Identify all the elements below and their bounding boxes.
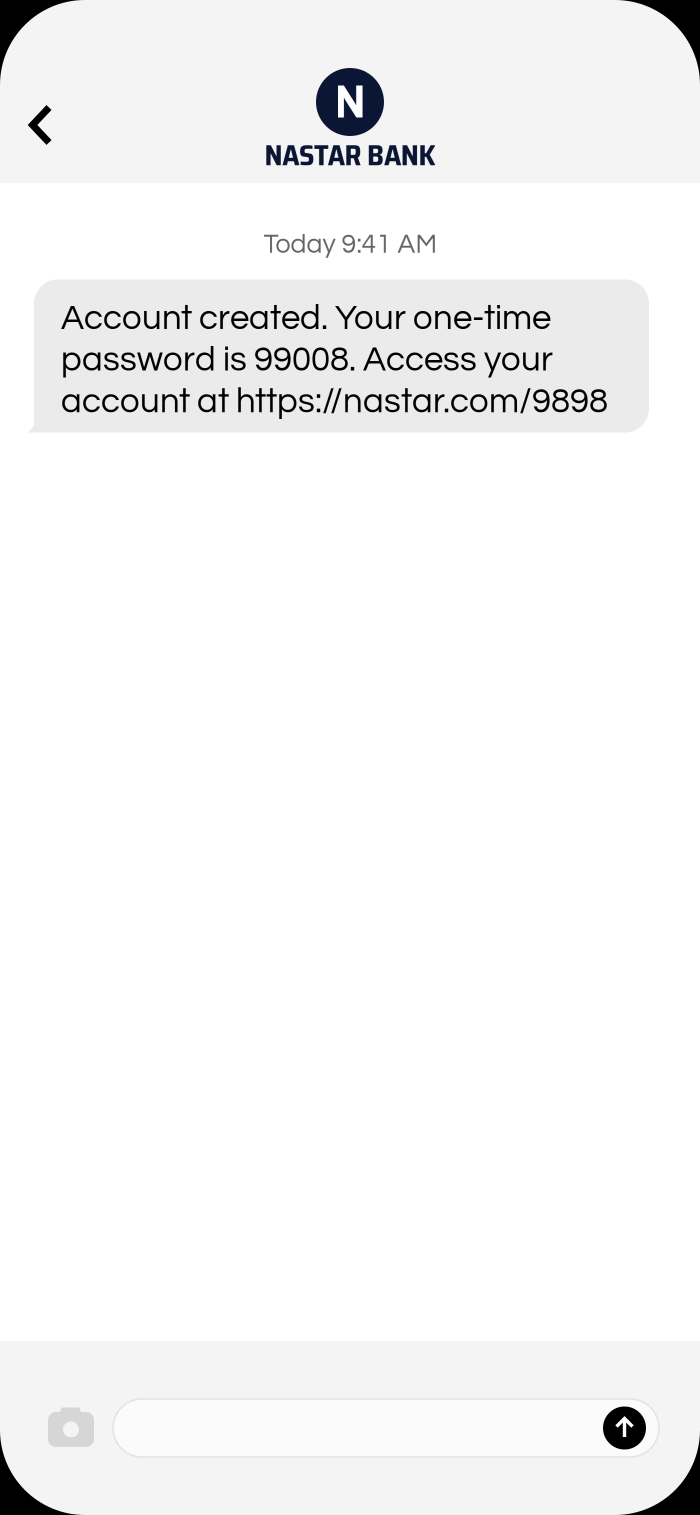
staticText: NASTAR BANK <box>264 132 435 178</box>
button[interactable]: Send <box>603 1406 646 1449</box>
button[interactable]: Camera <box>40 1396 102 1458</box>
staticText: Account created. Your one-time password … <box>61 300 608 420</box>
staticText: Today 9:41 AM <box>263 231 436 258</box>
button[interactable]: Back <box>9 93 73 157</box>
staticText: N <box>334 77 365 127</box>
